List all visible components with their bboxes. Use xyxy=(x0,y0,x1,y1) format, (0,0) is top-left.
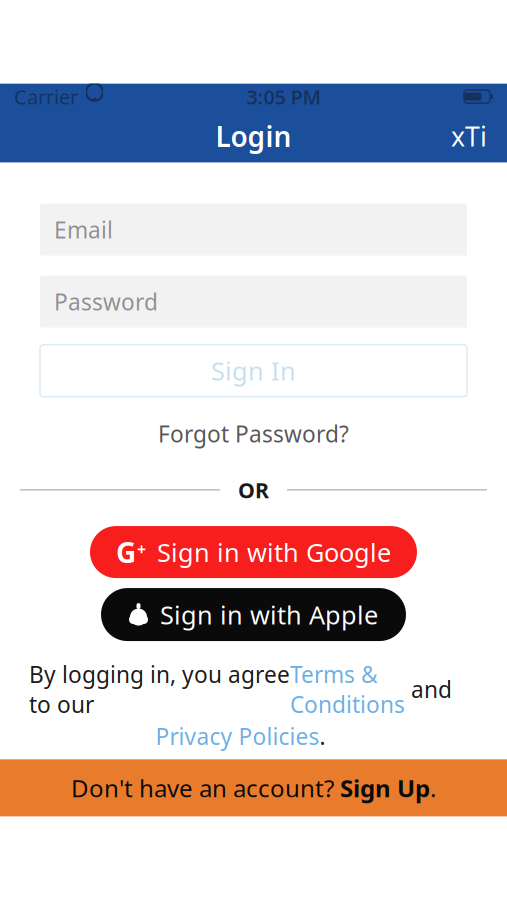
button[interactable]: Privacy Policies xyxy=(155,721,319,751)
staticText: G xyxy=(116,533,136,571)
staticText: Terms & Conditions xyxy=(290,659,405,719)
staticText: . xyxy=(319,721,325,751)
button[interactable]: Forgot Password? xyxy=(0,412,507,456)
button[interactable]: Sign in with Apple xyxy=(101,588,406,641)
staticText: Sign in with Apple xyxy=(160,598,378,631)
staticText: Don't have an account? xyxy=(71,772,340,804)
staticText: Email xyxy=(54,215,113,245)
button[interactable]: Don't have an account? xyxy=(0,759,507,816)
staticText: Login xyxy=(215,117,291,155)
staticText: Sign In xyxy=(211,354,296,387)
staticText: Carrier xyxy=(14,83,78,110)
button[interactable]: Terms & Conditions xyxy=(290,659,405,719)
button[interactable]: G xyxy=(90,526,417,578)
staticText: Sign in with Google xyxy=(157,535,391,569)
staticText: + xyxy=(137,538,146,560)
staticText: Forgot Password? xyxy=(158,419,349,449)
staticText: Password xyxy=(54,287,158,317)
button[interactable]: Sign In xyxy=(40,345,467,397)
button[interactable]: xTi xyxy=(443,112,495,160)
staticText: OR xyxy=(238,476,269,504)
button[interactable]: Password xyxy=(40,276,467,328)
staticText: xTi xyxy=(451,118,487,154)
button[interactable]: Email xyxy=(40,204,467,256)
staticText: By logging in, you agree to our xyxy=(29,659,290,719)
staticText: 3:05 PM xyxy=(246,83,321,110)
staticText: and xyxy=(405,674,452,704)
staticText: Privacy Policies xyxy=(155,721,319,751)
staticText: . xyxy=(430,772,436,804)
staticText: Sign Up xyxy=(340,772,430,804)
